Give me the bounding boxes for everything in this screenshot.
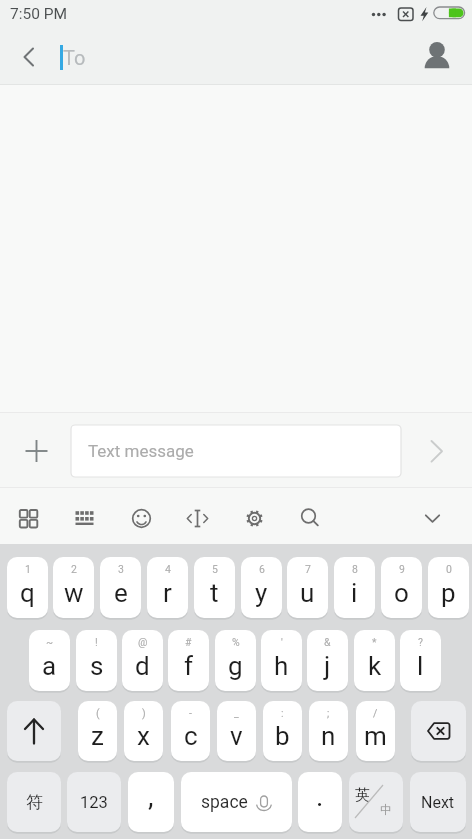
button[interactable]	[417, 37, 457, 77]
staticText: 符	[26, 792, 43, 813]
button[interactable]: 符	[7, 772, 61, 832]
button[interactable]	[411, 701, 466, 761]
button[interactable]: &	[307, 630, 348, 691]
button[interactable]: 9	[381, 557, 422, 618]
staticText: o	[394, 578, 409, 608]
staticText: ~	[46, 636, 54, 648]
staticText: p	[441, 578, 456, 608]
button[interactable]: 英	[349, 772, 403, 832]
staticText: y	[255, 578, 268, 608]
button[interactable]: _	[217, 701, 256, 761]
button[interactable]: -	[171, 701, 210, 761]
button[interactable]: 8	[334, 557, 375, 618]
staticText: 2	[71, 563, 77, 575]
staticText: i	[351, 578, 358, 608]
staticText: t	[210, 578, 219, 608]
button[interactable]	[239, 503, 270, 534]
staticText: 英	[355, 786, 370, 805]
staticText: /	[373, 707, 378, 719]
staticText: m	[364, 721, 387, 751]
staticText: j	[324, 651, 331, 681]
staticText: .	[316, 780, 324, 813]
button[interactable]	[69, 503, 100, 534]
button[interactable]	[22, 436, 52, 466]
staticText: 0	[446, 563, 452, 575]
button[interactable]: 0	[428, 557, 469, 618]
button[interactable]: 6	[241, 557, 282, 618]
staticText: %	[232, 636, 240, 648]
button[interactable]: 7	[287, 557, 328, 618]
staticText: 4	[165, 563, 171, 575]
staticText: Next	[421, 793, 455, 812]
staticText: l	[417, 651, 424, 681]
staticText: 123	[80, 793, 108, 812]
button[interactable]: 3	[100, 557, 141, 618]
button[interactable]: 5	[194, 557, 235, 618]
button[interactable]: Next	[410, 772, 466, 832]
staticText: v	[230, 721, 243, 751]
button[interactable]: @	[122, 630, 163, 691]
button[interactable]: 123	[67, 772, 121, 832]
button[interactable]	[7, 701, 61, 761]
button[interactable]: ;	[309, 701, 348, 761]
staticText: k	[368, 651, 382, 681]
staticText: d	[135, 651, 150, 681]
button[interactable]: 2	[53, 557, 94, 618]
staticText: -	[189, 707, 192, 719]
staticText: x	[137, 721, 150, 751]
staticText: @	[138, 636, 148, 648]
staticText: ,	[148, 780, 154, 813]
button[interactable]: #	[168, 630, 209, 691]
staticText: !	[95, 636, 98, 648]
staticText: )	[142, 707, 146, 719]
button[interactable]: ?	[400, 630, 441, 691]
staticText: r	[163, 578, 172, 608]
staticText: 7	[305, 563, 311, 575]
staticText: g	[228, 651, 243, 681]
button[interactable]: space	[181, 772, 292, 832]
button[interactable]: *	[354, 630, 395, 691]
staticText: (	[96, 707, 100, 719]
button[interactable]	[182, 503, 213, 534]
button[interactable]: 1	[7, 557, 48, 618]
button[interactable]	[417, 503, 448, 534]
staticText: h	[274, 651, 289, 681]
staticText: s	[90, 651, 104, 681]
staticText: 8	[352, 563, 358, 575]
button[interactable]	[13, 503, 44, 534]
staticText: q	[20, 578, 35, 608]
button[interactable]	[420, 434, 454, 468]
staticText: 7:50 PM	[10, 5, 68, 23]
staticText: b	[275, 721, 290, 751]
staticText: To	[63, 46, 86, 69]
staticText: z	[91, 721, 104, 751]
button[interactable]: ,	[128, 772, 174, 832]
button[interactable]: :	[263, 701, 302, 761]
staticText: #	[185, 636, 192, 648]
button[interactable]: )	[124, 701, 163, 761]
staticText: '	[281, 636, 283, 648]
staticText: 5	[212, 563, 218, 575]
staticText: ;	[327, 707, 330, 719]
staticText: f	[184, 651, 194, 681]
staticText: _	[234, 707, 239, 719]
button[interactable]: Text message	[71, 425, 401, 477]
button[interactable]	[126, 503, 157, 534]
staticText: ?	[418, 636, 423, 648]
staticText: Text message	[88, 441, 194, 461]
button[interactable]: !	[76, 630, 117, 691]
staticText: w	[64, 578, 84, 608]
button[interactable]: /	[356, 701, 395, 761]
button[interactable]: %	[215, 630, 256, 691]
staticText: 1	[25, 563, 31, 575]
button[interactable]: .	[298, 772, 342, 832]
button[interactable]	[295, 503, 326, 534]
button[interactable]: 4	[147, 557, 188, 618]
button[interactable]	[14, 37, 54, 77]
button[interactable]: (	[78, 701, 117, 761]
staticText: *	[372, 636, 377, 648]
staticText: a	[42, 651, 57, 681]
staticText: c	[184, 721, 198, 751]
button[interactable]: '	[261, 630, 302, 691]
button[interactable]: ~	[29, 630, 70, 691]
